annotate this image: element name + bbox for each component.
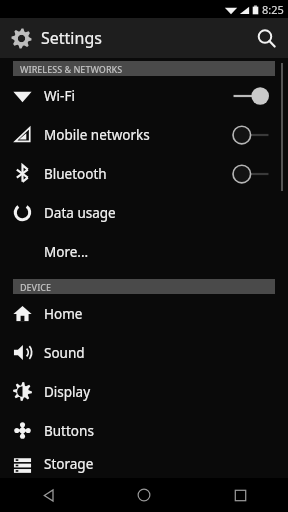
button[interactable]: Search [244,18,288,58]
button[interactable]: Wi-Fi switch [232,85,270,107]
button[interactable]: Mobile networks [0,115,288,154]
button[interactable]: Data usage [0,193,288,232]
staticText: Bluetooth [44,165,107,183]
button[interactable]: Home [96,478,192,512]
button[interactable]: Storage [0,450,288,478]
button[interactable]: Recents [192,478,288,512]
staticText: Sound [44,344,85,362]
button[interactable]: More... [0,232,288,271]
staticText: 8:25 [262,2,284,17]
button[interactable]: Bluetooth switch [232,163,270,185]
button[interactable]: Wi-Fi [0,76,288,115]
staticText: Storage [44,455,94,473]
button[interactable]: Display [0,372,288,411]
button[interactable]: Sound [0,333,288,372]
staticText: WIRELESS & NETWORKS [20,63,123,75]
staticText: Buttons [44,422,94,440]
button[interactable]: Mobile networks switch [232,124,270,146]
button[interactable]: Back [0,478,96,512]
staticText: DEVICE [20,281,52,293]
staticText: Home [44,305,83,323]
staticText: Settings [41,27,102,49]
staticText: Data usage [44,204,116,222]
button[interactable]: Home [0,294,288,333]
staticText: Mobile networks [44,126,150,144]
staticText: Wi-Fi [44,87,75,105]
staticText: More... [44,243,89,261]
staticText: Display [44,383,91,401]
button[interactable]: Buttons [0,411,288,450]
button[interactable]: Bluetooth [0,154,288,193]
